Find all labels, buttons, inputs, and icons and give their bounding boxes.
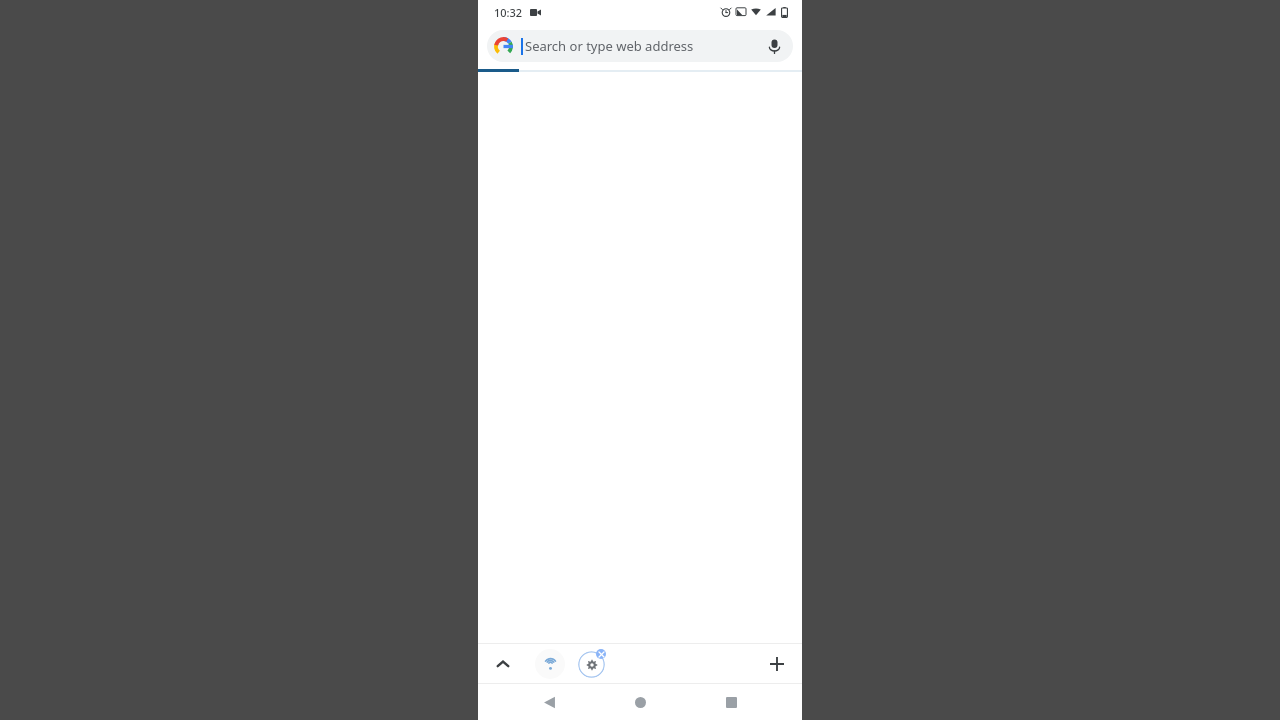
button[interactable]: Site settings (575, 648, 607, 680)
button[interactable]: Search or type web address (487, 30, 793, 62)
button[interactable]: Back (529, 684, 569, 720)
button[interactable]: New tab (762, 649, 792, 679)
staticText: 10:32 (494, 5, 523, 20)
button[interactable]: Expand (488, 649, 518, 679)
button[interactable]: Wi-Fi (535, 649, 565, 679)
button[interactable]: Recent apps (711, 684, 751, 720)
button[interactable]: Home (620, 684, 660, 720)
button[interactable]: Voice search (758, 30, 790, 62)
staticText: Search or type web address (525, 37, 694, 55)
